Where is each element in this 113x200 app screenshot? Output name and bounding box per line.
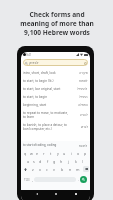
button[interactable]: s: [31, 157, 37, 165]
button[interactable]: Shift: [21, 165, 29, 173]
staticText: ×: [85, 62, 87, 65]
staticText: התחיל: [79, 95, 88, 99]
staticText: to start, to begin: [23, 95, 77, 99]
staticText: להתחיל: [77, 87, 88, 91]
staticText: d: [39, 159, 42, 164]
button[interactable]: לבדוק: [23, 59, 88, 66]
button[interactable]: Home: [51, 190, 60, 198]
staticText: לבדוק: [29, 61, 39, 65]
staticText: beginning, start: [23, 103, 76, 107]
staticText: להניע: [80, 113, 88, 117]
button[interactable]: Recent apps: [71, 190, 80, 198]
button[interactable]: beginning, start: [23, 101, 88, 109]
staticText: התחלה: [78, 103, 88, 107]
staticText: ,: [32, 177, 33, 182]
button[interactable]: to start, to begin: [23, 93, 88, 101]
staticText: x: [39, 167, 41, 172]
staticText: לפתוח: [79, 79, 88, 83]
staticText: .: [78, 177, 79, 182]
button[interactable]: Back: [32, 190, 41, 198]
button[interactable]: Backspace: [83, 166, 89, 172]
button[interactable]: o: [75, 149, 82, 157]
button[interactable]: x: [36, 165, 43, 173]
button[interactable]: to start, to begin (lit.): [23, 77, 88, 85]
staticText: y: [57, 151, 59, 156]
staticText: e: [36, 151, 39, 156]
button[interactable]: f: [44, 157, 51, 165]
staticText: r: [43, 151, 45, 156]
staticText: לגרש: [81, 125, 88, 129]
button[interactable]: z: [29, 165, 36, 173]
button[interactable]: w: [28, 149, 34, 157]
button[interactable]: to banish, to place a detour, to ban (co…: [23, 121, 88, 133]
staticText: Check forms and: [29, 10, 85, 19]
staticText: סקירה: [79, 71, 88, 75]
button[interactable]: e: [34, 149, 40, 157]
button[interactable]: .: [76, 173, 80, 186]
button[interactable]: q: [22, 149, 28, 157]
staticText: ?123: [24, 178, 30, 182]
button[interactable]: d: [37, 157, 44, 165]
button[interactable]: ?123: [23, 173, 30, 186]
staticText: 9:41: [26, 53, 32, 57]
staticText: לתכנת: [79, 144, 88, 147]
staticText: p: [84, 151, 87, 156]
staticText: meaning of more than: [20, 19, 94, 28]
staticText: f: [47, 159, 49, 164]
staticText: o: [77, 151, 80, 156]
staticText: h: [60, 159, 63, 164]
button[interactable]: n: [66, 165, 74, 173]
staticText: to banish, to place a detour, to ban (co…: [23, 123, 79, 131]
button[interactable]: Search: [80, 176, 87, 183]
staticText: i: [71, 151, 72, 156]
button[interactable]: h: [58, 157, 65, 165]
staticText: s: [33, 159, 35, 164]
staticText: j: [68, 159, 69, 164]
staticText: b: [61, 167, 64, 172]
staticText: g: [53, 159, 56, 164]
staticText: v: [53, 167, 55, 172]
button[interactable]: intro, short, draft, look: [23, 69, 88, 77]
button[interactable]: u: [61, 149, 68, 157]
button[interactable]: t: [47, 149, 54, 157]
staticText: q: [24, 151, 27, 156]
staticText: to start ofcoding, coding: [23, 143, 57, 147]
staticText: a: [27, 159, 30, 164]
button[interactable]: m: [74, 165, 82, 173]
button[interactable]: to repeat to move, to motivate, to learn: [23, 109, 88, 121]
button[interactable]: a: [25, 157, 31, 165]
staticText: t: [50, 151, 52, 156]
staticText: c: [46, 167, 48, 172]
button[interactable]: r: [40, 149, 47, 157]
button[interactable]: j: [65, 157, 72, 165]
button[interactable]: v: [50, 165, 58, 173]
staticText: n: [69, 167, 72, 172]
staticText: z: [32, 167, 34, 172]
button[interactable]: b: [58, 165, 66, 173]
button[interactable]: l: [79, 157, 86, 165]
button[interactable]: y: [54, 149, 61, 157]
staticText: u: [63, 151, 66, 156]
staticText: to start, to begin (lit.): [23, 79, 77, 83]
button[interactable]: k: [72, 157, 79, 165]
staticText: k: [75, 159, 77, 164]
button[interactable]: i: [68, 149, 75, 157]
button[interactable]: g: [51, 157, 58, 165]
button[interactable]: to start, bar original, start: [23, 85, 88, 93]
button[interactable]: p: [82, 149, 89, 157]
staticText: intro, short, draft, look: [23, 71, 77, 75]
staticText: to start, bar original, start: [23, 87, 75, 91]
staticText: 9,100 Hebrew words: [24, 28, 90, 37]
staticText: w: [30, 151, 33, 156]
staticText: to repeat to move, to motivate, to learn: [23, 111, 78, 119]
staticText: m: [76, 167, 80, 172]
button[interactable]: ,: [30, 173, 34, 186]
button[interactable]: c: [43, 165, 50, 173]
staticText: l: [82, 159, 83, 164]
